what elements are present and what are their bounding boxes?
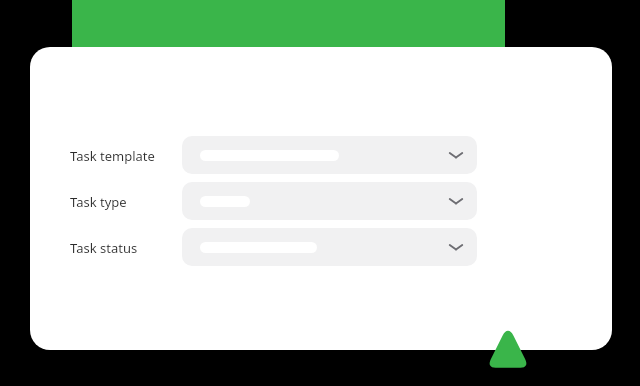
staticText: Task status — [70, 239, 138, 257]
button[interactable]: Brand mark — [487, 327, 529, 369]
staticText: Task type — [70, 193, 127, 211]
button[interactable]: Task type — [182, 182, 477, 220]
button[interactable]: Task status — [182, 228, 477, 266]
button[interactable]: Task template — [182, 136, 477, 174]
staticText: Task template — [70, 147, 155, 165]
